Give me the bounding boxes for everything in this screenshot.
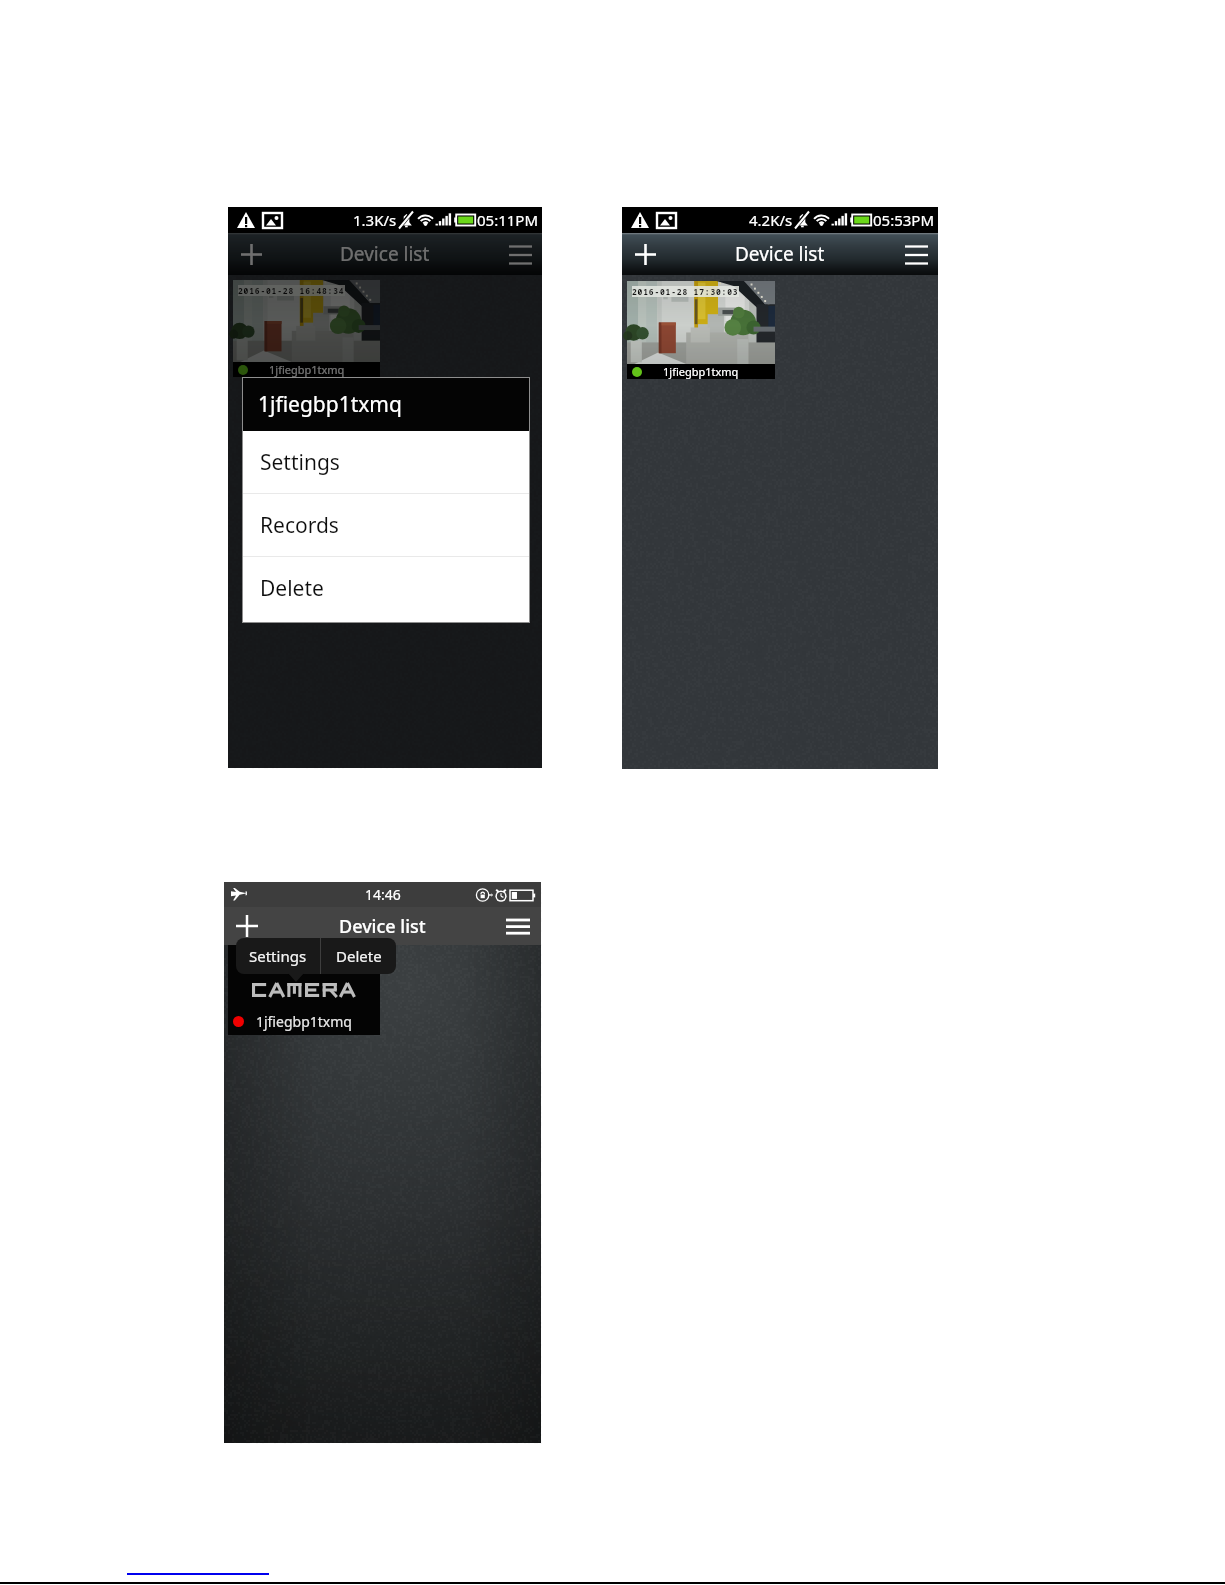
button[interactable]: Delete <box>243 557 529 619</box>
button[interactable]: Settings <box>236 938 320 974</box>
staticText: 1jfiegbp1txmq <box>269 362 345 377</box>
button[interactable]: Menu <box>499 233 541 275</box>
staticText: 4.2K/s <box>749 210 793 230</box>
staticText: Device list <box>339 914 426 939</box>
staticText: Settings <box>249 946 307 966</box>
button[interactable]: Settings <box>243 431 529 493</box>
button[interactable]: Delete <box>321 938 396 974</box>
staticText: 1jfiegbp1txmq <box>663 364 739 379</box>
staticText: Device list <box>340 241 430 267</box>
button[interactable]: 2016-01-28 17:30:03 <box>627 281 775 379</box>
button[interactable]: Menu <box>495 907 541 945</box>
button[interactable]: 1jfiegbp1txmq <box>228 945 380 1035</box>
staticText: 05:11PM <box>477 210 539 230</box>
button[interactable]: Records <box>243 494 529 556</box>
staticText: 14:46 <box>365 885 401 904</box>
staticText: 1.3K/s <box>353 210 397 230</box>
staticText: Settings <box>260 448 340 477</box>
staticText: 2016-01-28 16:48:34 <box>238 285 345 296</box>
staticText: 05:53PM <box>873 210 935 230</box>
staticText: 1jfiegbp1txmq <box>256 1012 352 1031</box>
button[interactable]: Add device <box>229 233 273 275</box>
button[interactable]: 1jfiegbp1txmq <box>243 378 529 431</box>
staticText: 1jfiegbp1txmq <box>258 390 402 419</box>
button[interactable]: 2016-01-28 16:48:34 <box>233 280 380 377</box>
button[interactable]: Add device <box>623 233 667 275</box>
staticText: Device list <box>735 241 825 267</box>
staticText: 2016-01-28 17:30:03 <box>632 286 739 297</box>
button[interactable]: Add device <box>224 907 270 945</box>
button[interactable]: Menu <box>895 233 937 275</box>
staticText: Delete <box>336 946 382 966</box>
staticText: Records <box>260 511 339 540</box>
staticText: Delete <box>260 574 324 603</box>
